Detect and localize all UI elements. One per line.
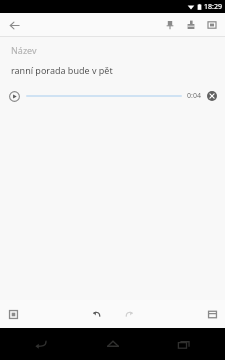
button[interactable]: Play recording: [6, 88, 22, 104]
button[interactable]: Seek bar: [26, 91, 182, 101]
button[interactable]: Název: [11, 44, 225, 56]
button[interactable]: Recent apps: [154, 328, 214, 360]
button[interactable]: Delete recording: [205, 89, 219, 103]
button[interactable]: Redo: [120, 305, 138, 323]
staticText: Název: [11, 44, 37, 56]
staticText: 18:29: [204, 2, 222, 12]
button[interactable]: More options: [203, 305, 221, 323]
staticText: ranní porada bude v pět: [11, 64, 113, 76]
button[interactable]: Archive: [203, 16, 221, 34]
staticText: 0:04: [187, 91, 201, 101]
button[interactable]: Back: [4, 15, 24, 35]
button[interactable]: Home: [83, 328, 143, 360]
button[interactable]: Undo: [88, 305, 106, 323]
button[interactable]: ranní porada bude v pět: [11, 64, 225, 76]
button[interactable]: Add attachment: [4, 305, 22, 323]
button[interactable]: System back: [11, 328, 71, 360]
button[interactable]: Pin note: [161, 16, 179, 34]
button[interactable]: Change colour: [182, 16, 200, 34]
